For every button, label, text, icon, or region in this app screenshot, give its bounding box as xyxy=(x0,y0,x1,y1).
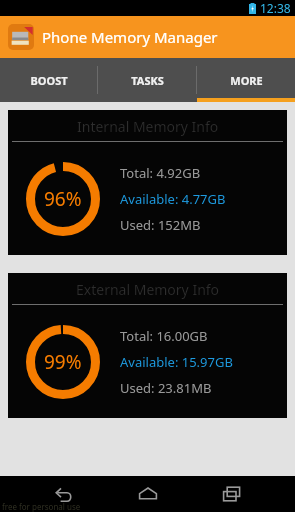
button[interactable]: MORE xyxy=(197,58,295,102)
staticText: MORE xyxy=(230,73,263,88)
button[interactable]: BOOST xyxy=(0,58,97,102)
button[interactable]: Back xyxy=(41,476,85,512)
staticText: External Memory Info xyxy=(76,280,220,299)
staticText: Used: 23.81MB xyxy=(120,379,212,397)
staticText: Available: 15.97GB xyxy=(120,353,233,371)
staticText: Internal Memory Info xyxy=(77,117,219,136)
staticText: Used: 152MB xyxy=(120,216,201,234)
staticText: 96% xyxy=(44,186,82,212)
button[interactable]: External Memory Info xyxy=(8,273,287,418)
button[interactable]: Home xyxy=(126,476,170,512)
staticText: free for personal use xyxy=(2,501,81,512)
staticText: TASKS xyxy=(131,73,164,88)
button[interactable]: Internal Memory Info xyxy=(8,110,287,255)
staticText: BOOST xyxy=(30,73,68,88)
staticText: Available: 4.77GB xyxy=(120,190,226,208)
button[interactable]: Recents xyxy=(210,476,254,512)
staticText: Total: 16.00GB xyxy=(120,327,208,345)
staticText: 99% xyxy=(44,349,82,375)
button[interactable]: TASKS xyxy=(98,58,196,102)
staticText: Total: 4.92GB xyxy=(120,164,201,182)
staticText: Phone Memory Manager xyxy=(42,27,218,47)
staticText: 12:38 xyxy=(260,0,291,16)
